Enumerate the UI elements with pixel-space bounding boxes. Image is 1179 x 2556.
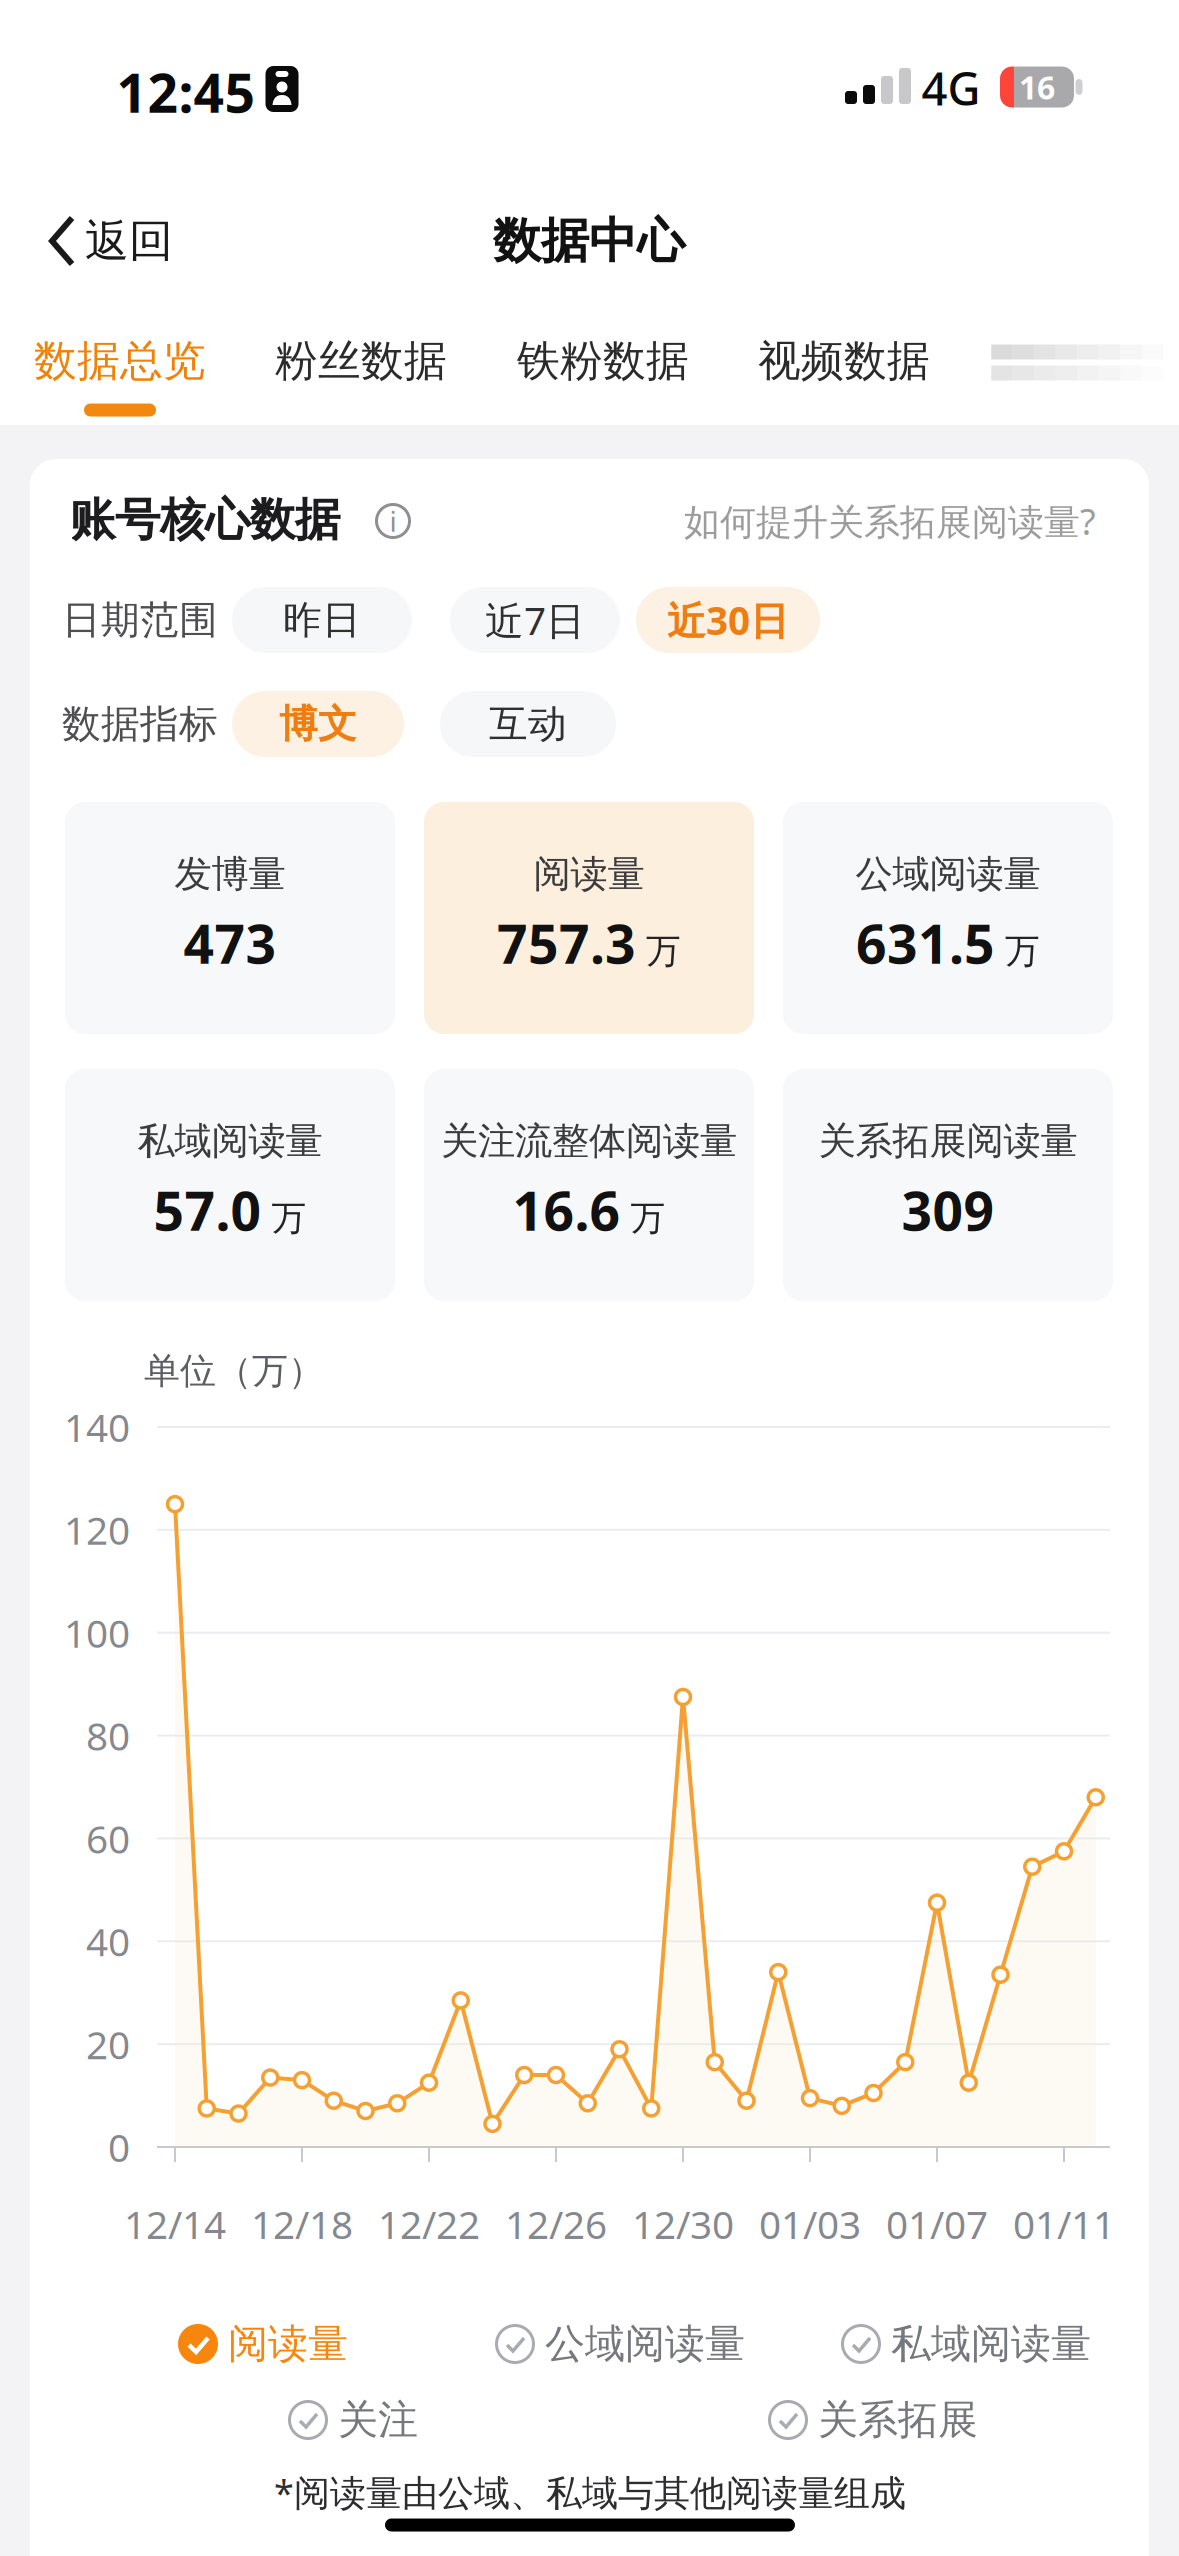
staticText: 16.6 [512,1175,620,1245]
staticText: 473 [183,908,276,978]
staticText: 关系拓展阅读量 [818,1118,1077,1164]
staticText: 公域阅读量 [545,2319,745,2368]
button[interactable]: 发博量 [65,802,395,1034]
staticText: 阅读量 [533,851,644,897]
button[interactable]: 互动 [440,691,616,757]
button[interactable]: 返回 [47,214,173,268]
staticText: 私域阅读量 [137,1118,322,1164]
staticText: 16 [1019,66,1055,108]
staticText: 账号核心数据 [70,492,340,548]
button[interactable]: 公域阅读量 [495,2319,745,2368]
staticText: 万 [630,1197,665,1239]
staticText: 互动 [489,700,567,748]
staticText: 757.3 [497,908,636,978]
staticText: i [389,502,396,540]
staticText: 57.0 [153,1175,261,1245]
staticText: 数据总览 [34,335,206,387]
staticText: 12/14 [124,2198,226,2250]
staticText: 100 [64,1607,130,1658]
staticText: 12/26 [505,2198,607,2250]
button[interactable]: 视频数据 [758,335,930,387]
button[interactable]: 私域阅读量 [65,1069,395,1301]
button[interactable]: 近7日 [450,587,620,653]
button[interactable]: 铁粉数据 [517,335,689,387]
staticText: 01/07 [886,2198,988,2250]
staticText: 万 [1005,930,1040,972]
button[interactable]: 如何提升关系拓展阅读量? [684,497,1096,545]
staticText: 12:45 [116,57,255,127]
staticText: 309 [901,1175,994,1245]
staticText: 私域阅读量 [891,2319,1091,2368]
button[interactable]: 关系拓展 [768,2395,978,2444]
staticText: 0 [108,2121,130,2173]
staticText: 视频数据 [758,335,930,387]
staticText: 关注流整体阅读量 [441,1118,737,1164]
staticText: 01/03 [759,2198,861,2250]
button[interactable]: 关注 [288,2395,418,2444]
staticText: 20 [86,2018,130,2070]
staticText: 12/30 [632,2198,734,2250]
staticText: 数据中心 [493,211,685,270]
button[interactable]: 阅读量 [424,802,754,1034]
staticText: 发博量 [174,851,285,897]
staticText: 120 [64,1504,130,1555]
staticText: 博文 [279,700,357,748]
button[interactable]: 阅读量 [178,2319,348,2368]
staticText: 4G [921,58,980,118]
button[interactable]: 粉丝数据 [275,335,447,387]
button[interactable]: 关于账号核心数据 [375,503,411,539]
staticText: *阅读量由公域、私域与其他阅读量组成 [274,2468,906,2516]
staticText: 关注 [338,2395,418,2444]
staticText: 单位（万） [144,1349,324,1393]
staticText: 40 [86,1916,130,1967]
staticText: 631.5 [856,908,995,978]
staticText: 公域阅读量 [855,851,1040,897]
staticText: 12/18 [251,2198,353,2250]
button[interactable]: 博文 [232,691,404,757]
button[interactable]: 昨日 [232,587,412,653]
button[interactable]: 数据总览 [34,335,206,387]
staticText: 140 [64,1401,130,1453]
button[interactable]: 关系拓展阅读量 [783,1069,1113,1301]
staticText: 12/22 [378,2198,480,2250]
staticText: 关系拓展 [818,2395,978,2444]
button[interactable]: 关注流整体阅读量 [424,1069,754,1301]
staticText: 数据指标 [62,700,218,748]
staticText: 铁粉数据 [517,335,689,387]
button[interactable]: 近30日 [636,587,820,653]
staticText: 60 [86,1813,130,1864]
staticText: 01/11 [1013,2198,1115,2250]
staticText: 日期范围 [62,596,218,644]
button[interactable]: 公域阅读量 [783,802,1113,1034]
staticText: 万 [646,930,681,972]
staticText: 80 [86,1710,130,1761]
staticText: 阅读量 [228,2319,348,2368]
button[interactable]: 私域阅读量 [841,2319,1091,2368]
staticText: 返回 [85,214,173,268]
staticText: 昨日 [283,596,361,644]
staticText: 粉丝数据 [275,335,447,387]
staticText: 近7日 [485,594,585,646]
staticText: 如何提升关系拓展阅读量? [684,497,1096,545]
staticText: 近30日 [667,594,789,646]
staticText: 万 [271,1197,306,1239]
